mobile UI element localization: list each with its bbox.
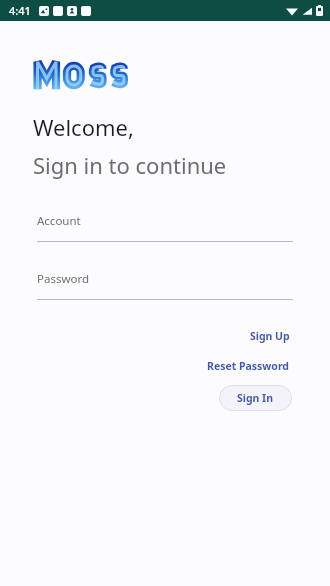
staticText: Sign Up — [250, 329, 290, 343]
button[interactable]: Sign Up — [248, 328, 292, 344]
button[interactable]: Sign In — [219, 385, 292, 411]
button[interactable]: Account — [37, 213, 293, 242]
staticText: Reset Password — [207, 359, 290, 373]
staticText: Sign in to continue — [33, 150, 227, 180]
button[interactable]: Reset Password — [205, 358, 292, 374]
staticText: Welcome, — [33, 112, 134, 142]
staticText: Account — [37, 213, 81, 229]
staticText: Password — [37, 271, 90, 287]
staticText: 4:41 — [9, 3, 31, 18]
staticText: Sign In — [237, 391, 274, 405]
button[interactable]: Password — [37, 271, 293, 300]
